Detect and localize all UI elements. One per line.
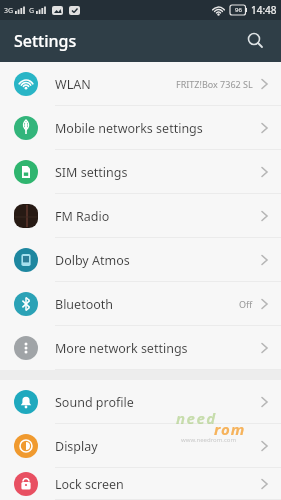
staticText: G: [29, 6, 35, 16]
button[interactable]: More network settings: [0, 326, 281, 370]
staticText: 3G: [4, 6, 14, 16]
staticText: Lock screen: [55, 476, 124, 493]
staticText: WLAN: [55, 76, 91, 93]
button[interactable]: Lock screen: [0, 468, 281, 500]
staticText: Off: [239, 298, 253, 310]
staticText: Dolby Atmos: [55, 252, 130, 269]
button[interactable]: SIM settings: [0, 150, 281, 194]
staticText: 14:48: [251, 3, 277, 17]
button[interactable]: Display: [0, 424, 281, 468]
staticText: 96: [235, 6, 242, 14]
staticText: need: [176, 408, 217, 428]
staticText: www.needrom.com: [181, 436, 237, 444]
staticText: SIM settings: [55, 164, 128, 181]
staticText: FRITZ!Box 7362 SL: [176, 78, 253, 90]
staticText: More network settings: [55, 340, 188, 357]
staticText: Mobile networks settings: [55, 120, 203, 137]
staticText: Settings: [14, 30, 77, 52]
button[interactable]: Bluetooth: [0, 282, 281, 326]
button[interactable]: Mobile networks settings: [0, 106, 281, 150]
button[interactable]: [247, 32, 265, 50]
staticText: Bluetooth: [55, 296, 114, 313]
button[interactable]: WLAN: [0, 62, 281, 106]
button[interactable]: Sound profile: [0, 380, 281, 424]
staticText: rom: [214, 419, 246, 439]
button[interactable]: FM Radio: [0, 194, 281, 238]
button[interactable]: Dolby Atmos: [0, 238, 281, 282]
staticText: Display: [55, 438, 98, 455]
staticText: Sound profile: [55, 394, 134, 411]
staticText: FM Radio: [55, 208, 110, 225]
